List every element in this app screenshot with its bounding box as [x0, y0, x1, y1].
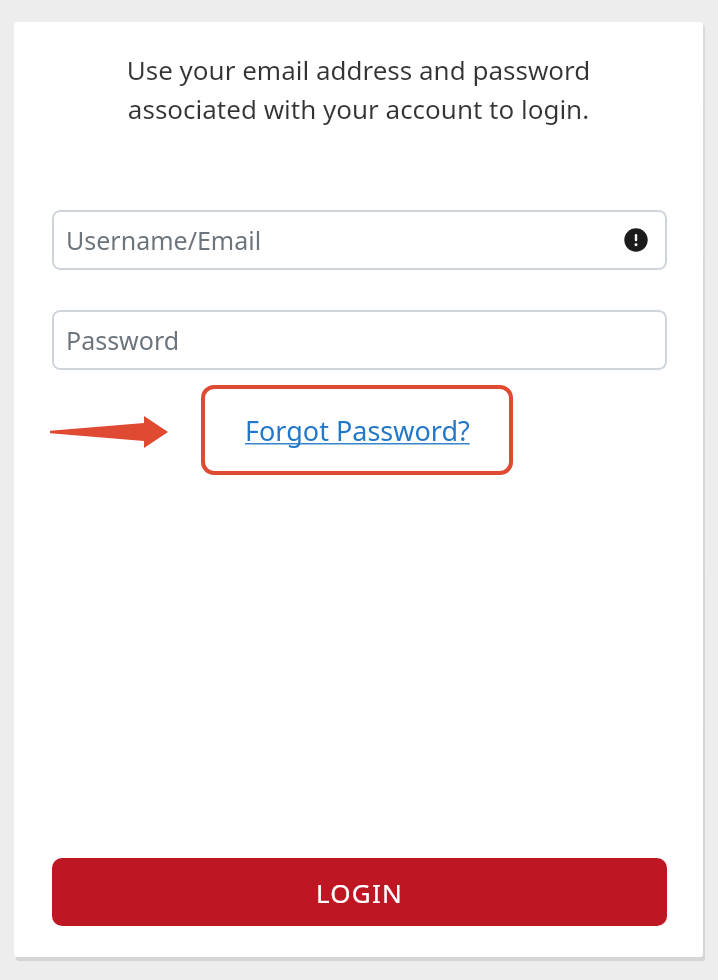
- button[interactable]: Username/Email: [52, 210, 667, 270]
- button[interactable]: LOGIN: [52, 858, 667, 926]
- button[interactable]: Forgot Password?: [235, 406, 480, 455]
- other: Error: [621, 225, 651, 255]
- staticText: Use your email address and password asso…: [52, 52, 665, 127]
- staticText: Forgot Password?: [245, 412, 470, 449]
- staticText: LOGIN: [316, 875, 403, 910]
- button[interactable]: Password: [52, 310, 667, 370]
- staticText: Password: [66, 323, 180, 357]
- staticText: Username/Email: [66, 223, 621, 257]
